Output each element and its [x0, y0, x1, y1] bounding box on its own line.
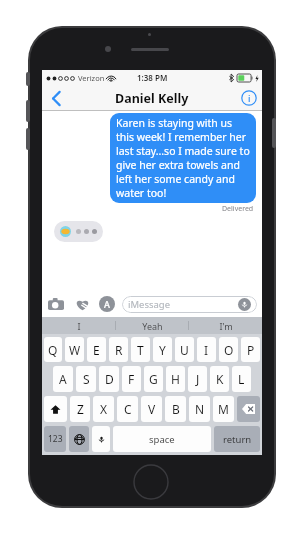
button[interactable]: I	[197, 337, 216, 362]
staticText: Karen is staying with us this week! I re…	[116, 116, 250, 200]
staticText: F	[128, 371, 135, 387]
button[interactable]: S	[76, 366, 96, 392]
staticText: D	[105, 371, 114, 387]
staticText: Daniel Kelly	[115, 90, 189, 107]
button[interactable]: Dictation	[92, 426, 110, 452]
button[interactable]: F	[122, 366, 141, 392]
button[interactable]	[54, 221, 103, 242]
button[interactable]: H	[166, 366, 185, 392]
staticText: K	[216, 371, 224, 387]
staticText: Delivered	[222, 204, 254, 214]
button[interactable]: A	[53, 366, 73, 392]
staticText: L	[238, 371, 245, 387]
staticText: R	[115, 342, 123, 358]
button[interactable]: K	[210, 366, 229, 392]
staticText: T	[137, 342, 144, 358]
button[interactable]: Karen is staying with us this week! I re…	[110, 113, 256, 203]
staticText: G	[149, 371, 158, 387]
button[interactable]: Y	[153, 337, 172, 362]
staticText: X	[100, 401, 108, 417]
staticText: N	[195, 401, 205, 417]
staticText: A	[59, 371, 67, 387]
button[interactable]: Backspace	[237, 396, 260, 422]
button[interactable]: M	[213, 396, 234, 422]
button[interactable]: B	[165, 396, 186, 422]
button[interactable]: C	[117, 396, 138, 422]
button[interactable]: X	[93, 396, 114, 422]
staticText: 1:38 PM	[137, 72, 168, 83]
staticText: I	[77, 320, 81, 332]
staticText: W	[69, 342, 81, 358]
button[interactable]: L	[232, 366, 251, 392]
button[interactable]: G	[144, 366, 163, 392]
staticText: iMessage	[128, 298, 238, 311]
staticText: E	[93, 342, 100, 358]
button[interactable]: T	[131, 337, 150, 362]
button[interactable]: P	[241, 337, 260, 362]
button[interactable]: N	[189, 396, 210, 422]
staticText: Yeah	[142, 320, 163, 332]
staticText: i	[248, 92, 251, 104]
staticText: Q	[48, 342, 58, 358]
staticText: I	[204, 342, 209, 358]
staticText: Z	[77, 401, 84, 417]
button[interactable]: W	[65, 337, 84, 362]
staticText: M	[218, 401, 229, 417]
button[interactable]: Q	[44, 337, 62, 362]
button[interactable]: return	[214, 426, 260, 452]
staticText: Y	[159, 342, 166, 358]
button[interactable]: Yeah	[116, 317, 189, 334]
staticText: V	[148, 401, 156, 417]
staticText: H	[171, 371, 180, 387]
button[interactable]: Camera	[47, 295, 65, 313]
button[interactable]: Digital Touch	[73, 295, 91, 313]
staticText: space	[149, 433, 175, 446]
button[interactable]: Home	[133, 464, 169, 500]
button[interactable]: U	[175, 337, 194, 362]
staticText: return	[223, 433, 252, 446]
button[interactable]: Emoji keyboard	[69, 426, 89, 452]
button[interactable]: O	[219, 337, 238, 362]
staticText: B	[172, 401, 180, 417]
staticText: S	[83, 371, 90, 387]
staticText: P	[247, 342, 255, 358]
button[interactable]: Details	[241, 90, 257, 106]
staticText: C	[124, 401, 132, 417]
staticText: Verizon	[78, 73, 105, 83]
staticText: U	[180, 342, 189, 358]
staticText: A	[104, 298, 110, 310]
button[interactable]: D	[99, 366, 119, 392]
button[interactable]: 123	[44, 426, 66, 452]
staticText: I'm	[219, 320, 233, 332]
staticText: 123	[48, 433, 63, 445]
button[interactable]: iMessage	[122, 296, 257, 313]
button[interactable]: Back	[45, 87, 67, 109]
button[interactable]: R	[109, 337, 128, 362]
button[interactable]: I'm	[189, 317, 262, 334]
button[interactable]: space	[113, 426, 211, 452]
button[interactable]: Shift	[44, 396, 67, 422]
button[interactable]: V	[141, 396, 162, 422]
button[interactable]: Z	[70, 396, 90, 422]
button[interactable]: J	[188, 366, 207, 392]
button[interactable]: I	[42, 317, 116, 334]
staticText: J	[196, 371, 200, 387]
staticText: O	[224, 342, 234, 358]
button[interactable]: E	[87, 337, 106, 362]
button[interactable]: App Store	[99, 296, 115, 312]
